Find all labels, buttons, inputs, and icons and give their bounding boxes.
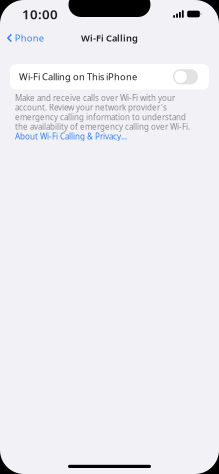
staticText: Make and receive calls over Wi-Fi with y… [15, 92, 190, 142]
staticText: Wi-Fi Calling [81, 32, 138, 44]
staticText: 10:00 [22, 5, 58, 23]
button[interactable]: About Wi-Fi Calling & Privacy... [15, 92, 195, 142]
staticText: Wi-Fi Calling on This iPhone [19, 71, 137, 83]
button[interactable]: Phone [0, 29, 48, 47]
staticText: Phone [15, 32, 44, 44]
button[interactable]: Wi-Fi Calling on This iPhone [173, 69, 198, 84]
